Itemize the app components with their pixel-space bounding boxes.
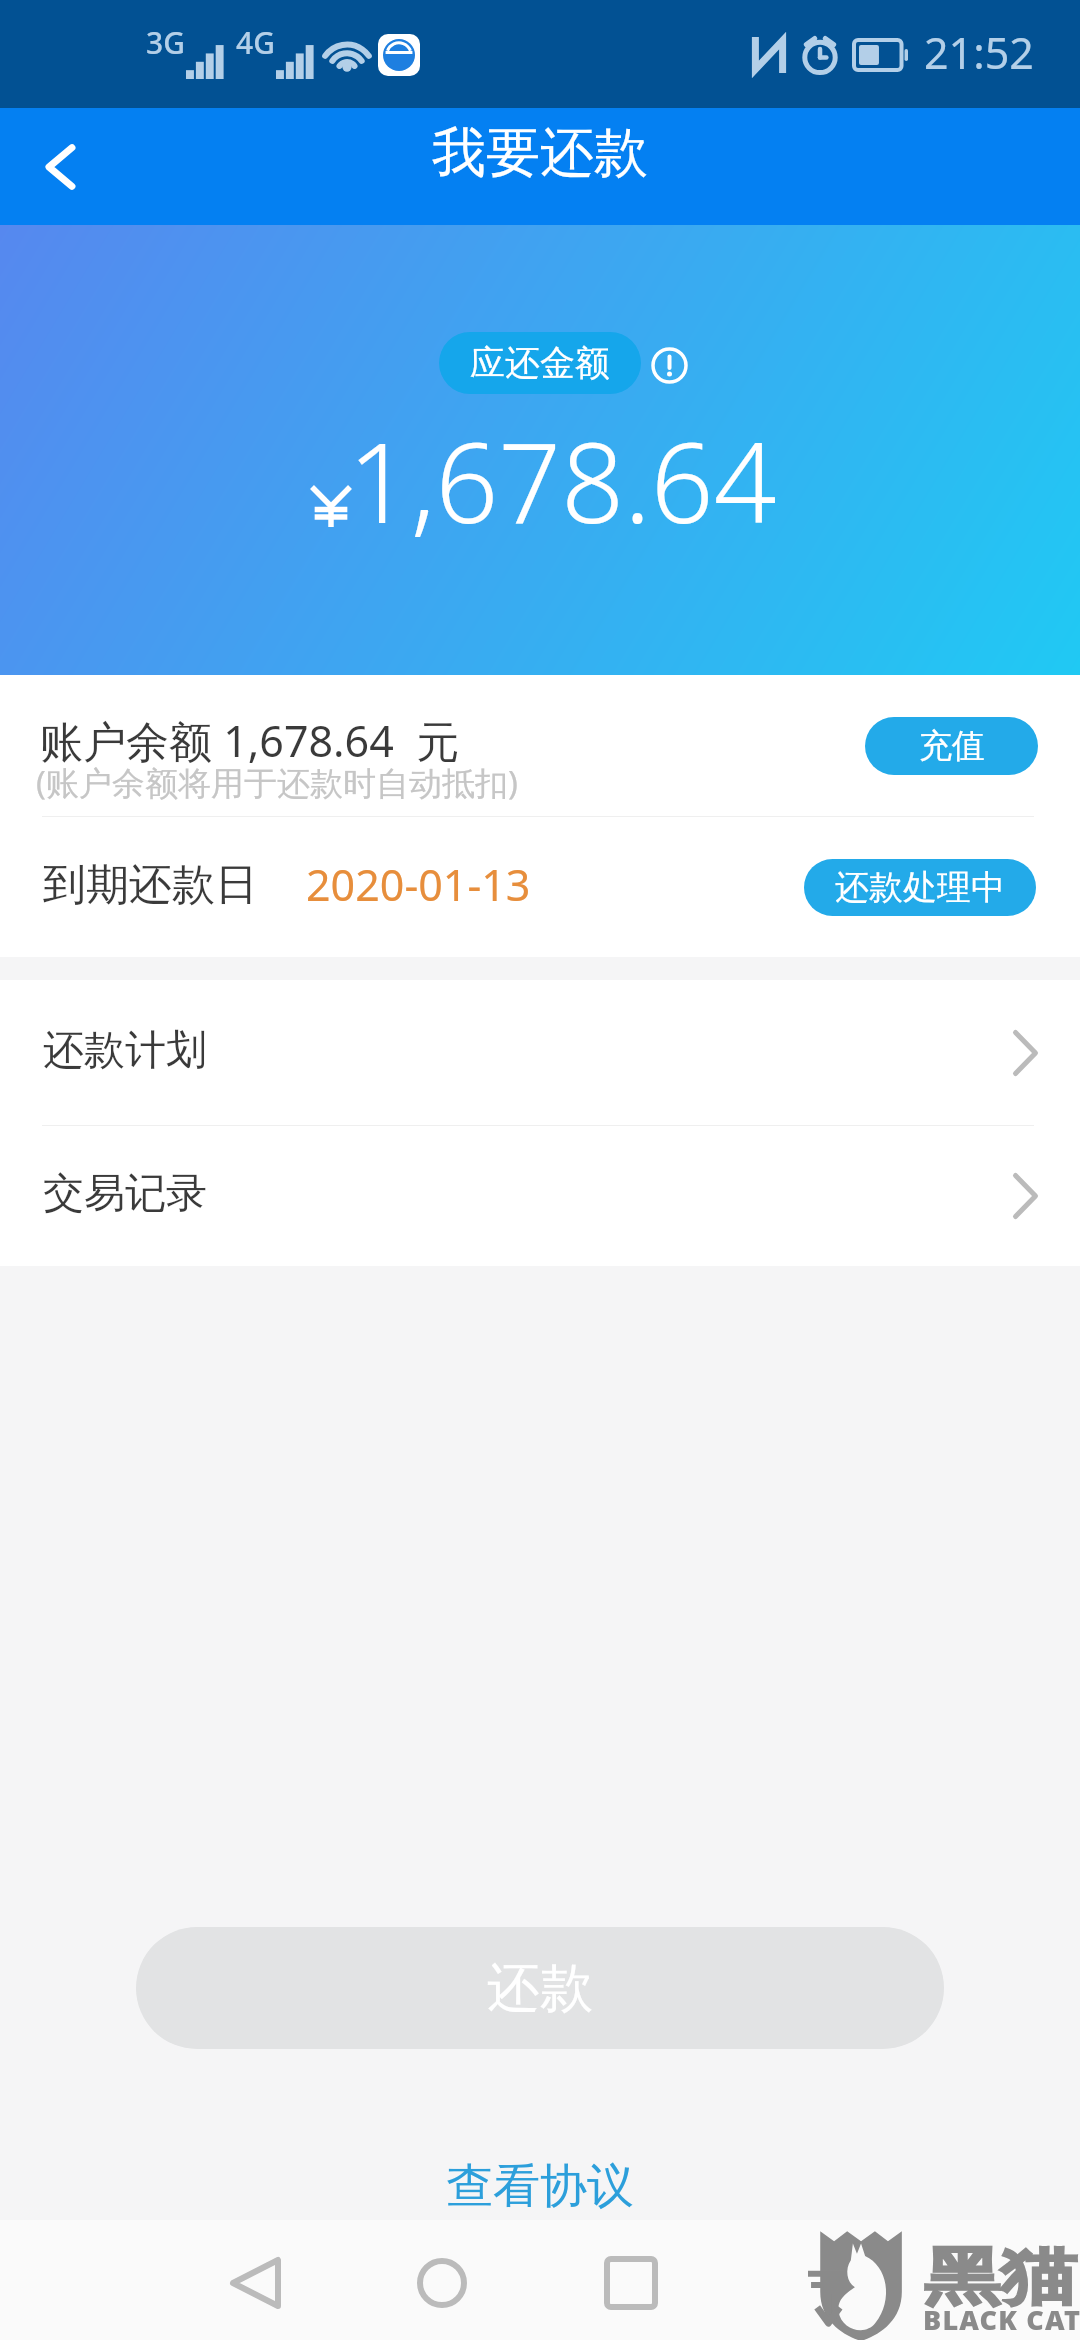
button[interactable]: Home (387, 2228, 497, 2338)
staticText: 充值 (919, 725, 985, 767)
staticText: 黑猫 (924, 2238, 1076, 2316)
staticText: 还款处理中 (835, 866, 1005, 909)
button[interactable]: Back (20, 127, 100, 207)
staticText: 应还金额 (470, 341, 610, 385)
staticText: 到期还款日 (43, 858, 258, 912)
staticText: 还款 (487, 1955, 593, 2022)
staticText: 2020-01-13 (306, 855, 531, 914)
staticText: 3G (146, 22, 185, 63)
button[interactable]: 还款计划 (0, 980, 1080, 1125)
staticText: 4G (236, 22, 275, 63)
button[interactable]: 查看协议 (426, 2153, 654, 2220)
staticText: 21:52 (924, 23, 1034, 82)
staticText: 交易记录 (43, 1168, 207, 1220)
button[interactable]: 充值 (865, 717, 1038, 775)
staticText: 还款计划 (43, 1025, 207, 1077)
staticText: 1,678.64 (348, 405, 777, 555)
staticText: BLACK CAT (923, 2301, 1080, 2338)
staticText: 账户余额 1,678.64 元 (40, 711, 460, 770)
staticText: 我要还款 (432, 119, 648, 187)
button[interactable]: Back (200, 2228, 310, 2338)
staticText: (账户余额将用于还款时自动抵扣) (36, 760, 518, 805)
button[interactable]: 交易记录 (0, 1126, 1080, 1266)
staticText: 查看协议 (446, 2157, 634, 2216)
button[interactable]: Recents (576, 2228, 686, 2338)
button[interactable]: 还款 (136, 1927, 944, 2049)
button[interactable]: 还款处理中 (804, 859, 1036, 916)
